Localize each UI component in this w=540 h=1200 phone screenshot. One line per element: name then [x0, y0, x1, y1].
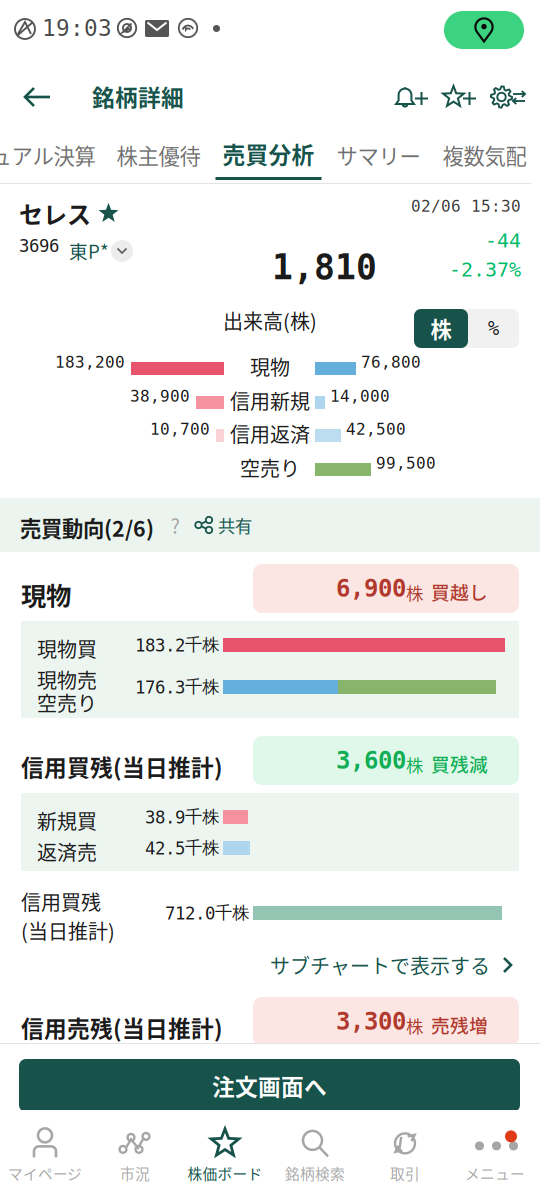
staticText: 信用新規	[230, 386, 310, 415]
staticText: 売買動向(2/6)	[20, 512, 154, 543]
staticText: 02/06 15:30	[411, 197, 521, 216]
staticText: -44	[485, 229, 521, 252]
button[interactable]: マイページ	[0, 1110, 90, 1200]
staticText: 売残増	[423, 1011, 488, 1038]
staticText: 買残減	[423, 750, 488, 777]
staticText: サマリー	[336, 140, 420, 170]
button[interactable]: 複数気配	[431, 130, 537, 180]
button[interactable]: お気に入り追加	[438, 78, 482, 116]
staticText: 10,700	[150, 420, 210, 439]
staticText: 183.2千株	[135, 634, 219, 656]
staticText: 信用買残(当日推計)	[21, 750, 223, 783]
staticText: 銘柄詳細	[92, 80, 184, 113]
staticText: 注文画面へ	[212, 1069, 327, 1102]
staticText: 新規買	[37, 806, 97, 835]
staticText: ュアル決算	[0, 140, 95, 170]
staticText: 3,300	[336, 1007, 406, 1035]
button[interactable]: アラート追加	[390, 78, 434, 116]
button[interactable]: 市場を切替	[111, 240, 133, 262]
staticText: 現物買	[37, 634, 97, 663]
staticText: 株	[406, 752, 423, 777]
staticText: メニュー	[465, 1162, 525, 1184]
staticText: サブチャートで表示する	[270, 950, 490, 979]
button[interactable]: 市況	[90, 1110, 180, 1200]
button[interactable]: ュアル決算	[0, 130, 105, 180]
button[interactable]: 株	[414, 309, 468, 348]
staticText: 76,800	[361, 353, 421, 372]
staticText: 東P*	[69, 237, 109, 264]
staticText: 株	[430, 313, 451, 344]
staticText: 183,200	[55, 353, 125, 372]
staticText: 株	[406, 1013, 423, 1038]
staticText: 信用返済	[230, 419, 310, 448]
staticText: 株主優待	[116, 140, 200, 170]
staticText: 712.0千株	[165, 902, 249, 924]
button[interactable]: ヘルプ	[158, 508, 192, 542]
staticText: 信用買残	[21, 887, 101, 916]
button[interactable]: 設定	[486, 78, 534, 116]
staticText: 176.3千株	[135, 676, 219, 698]
staticText: 返済売	[37, 837, 97, 866]
staticText: 38.9千株	[145, 806, 219, 828]
staticText: 6,900	[336, 574, 406, 602]
staticText: 14,000	[330, 387, 390, 406]
staticText: セレス	[19, 196, 91, 231]
staticText: 株価ボード	[187, 1162, 262, 1184]
staticText: 現物売	[37, 665, 97, 694]
staticText: 19:03	[42, 15, 112, 41]
staticText: 市況	[120, 1162, 150, 1184]
staticText: ?	[170, 510, 179, 539]
staticText: 3,600	[336, 746, 406, 774]
staticText: 99,500	[376, 454, 436, 473]
staticText: (当日推計)	[21, 916, 115, 945]
button[interactable]: サマリー	[325, 130, 431, 180]
staticText: 信用売残(当日推計)	[21, 1011, 223, 1044]
staticText: 1,810	[272, 247, 377, 287]
staticText: 空売り	[240, 453, 300, 482]
button[interactable]: 株価ボード	[180, 1110, 270, 1200]
staticText: 38,900	[130, 387, 190, 406]
staticText: 出来高(株)	[223, 306, 317, 335]
staticText: 現物	[250, 352, 290, 381]
staticText: -2.37%	[449, 258, 521, 281]
staticText: 3696	[19, 236, 59, 256]
staticText: 42.5千株	[145, 837, 219, 859]
staticText: %	[488, 318, 499, 339]
staticText: 売買分析	[222, 137, 314, 170]
staticText: 空売り	[37, 688, 97, 717]
button[interactable]: 戻る	[16, 78, 58, 116]
button[interactable]: 共有	[190, 508, 257, 542]
button[interactable]: 株主優待	[105, 130, 211, 180]
staticText: 株	[406, 580, 423, 605]
staticText: 共有	[218, 512, 252, 538]
staticText: 複数気配	[442, 140, 526, 170]
staticText: 買越し	[423, 578, 488, 605]
button[interactable]: メニュー	[450, 1110, 540, 1200]
button[interactable]: 銘柄検索	[270, 1110, 360, 1200]
staticText: 現物	[21, 576, 71, 613]
staticText: 銘柄検索	[285, 1162, 345, 1184]
button[interactable]: 売買分析	[211, 130, 325, 180]
button[interactable]: %	[468, 309, 519, 348]
staticText: 取引	[390, 1162, 420, 1184]
staticText: マイページ	[8, 1162, 82, 1184]
button[interactable]: 注文画面へ	[19, 1059, 520, 1112]
button[interactable]: サブチャートで表示する	[264, 949, 520, 981]
staticText: 42,500	[346, 420, 406, 439]
button[interactable]: 取引	[360, 1110, 450, 1200]
